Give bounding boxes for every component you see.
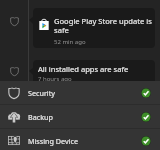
staticText: 52 min ago bbox=[54, 38, 86, 46]
button[interactable]: Security bbox=[0, 81, 160, 104]
staticText: Missing Device bbox=[28, 136, 79, 146]
staticText: 7 hours ago bbox=[38, 75, 72, 83]
staticText: Security bbox=[28, 88, 55, 98]
staticText: All installed apps are safe bbox=[38, 64, 129, 74]
button[interactable]: Google Play Store update is safe bbox=[33, 8, 155, 48]
button[interactable]: All installed apps are safe bbox=[33, 60, 155, 94]
staticText: Google Play Store update is safe bbox=[54, 16, 152, 35]
button[interactable]: Backup bbox=[0, 105, 160, 128]
staticText: Backup bbox=[28, 112, 53, 122]
button[interactable]: Missing Device bbox=[0, 129, 160, 150]
